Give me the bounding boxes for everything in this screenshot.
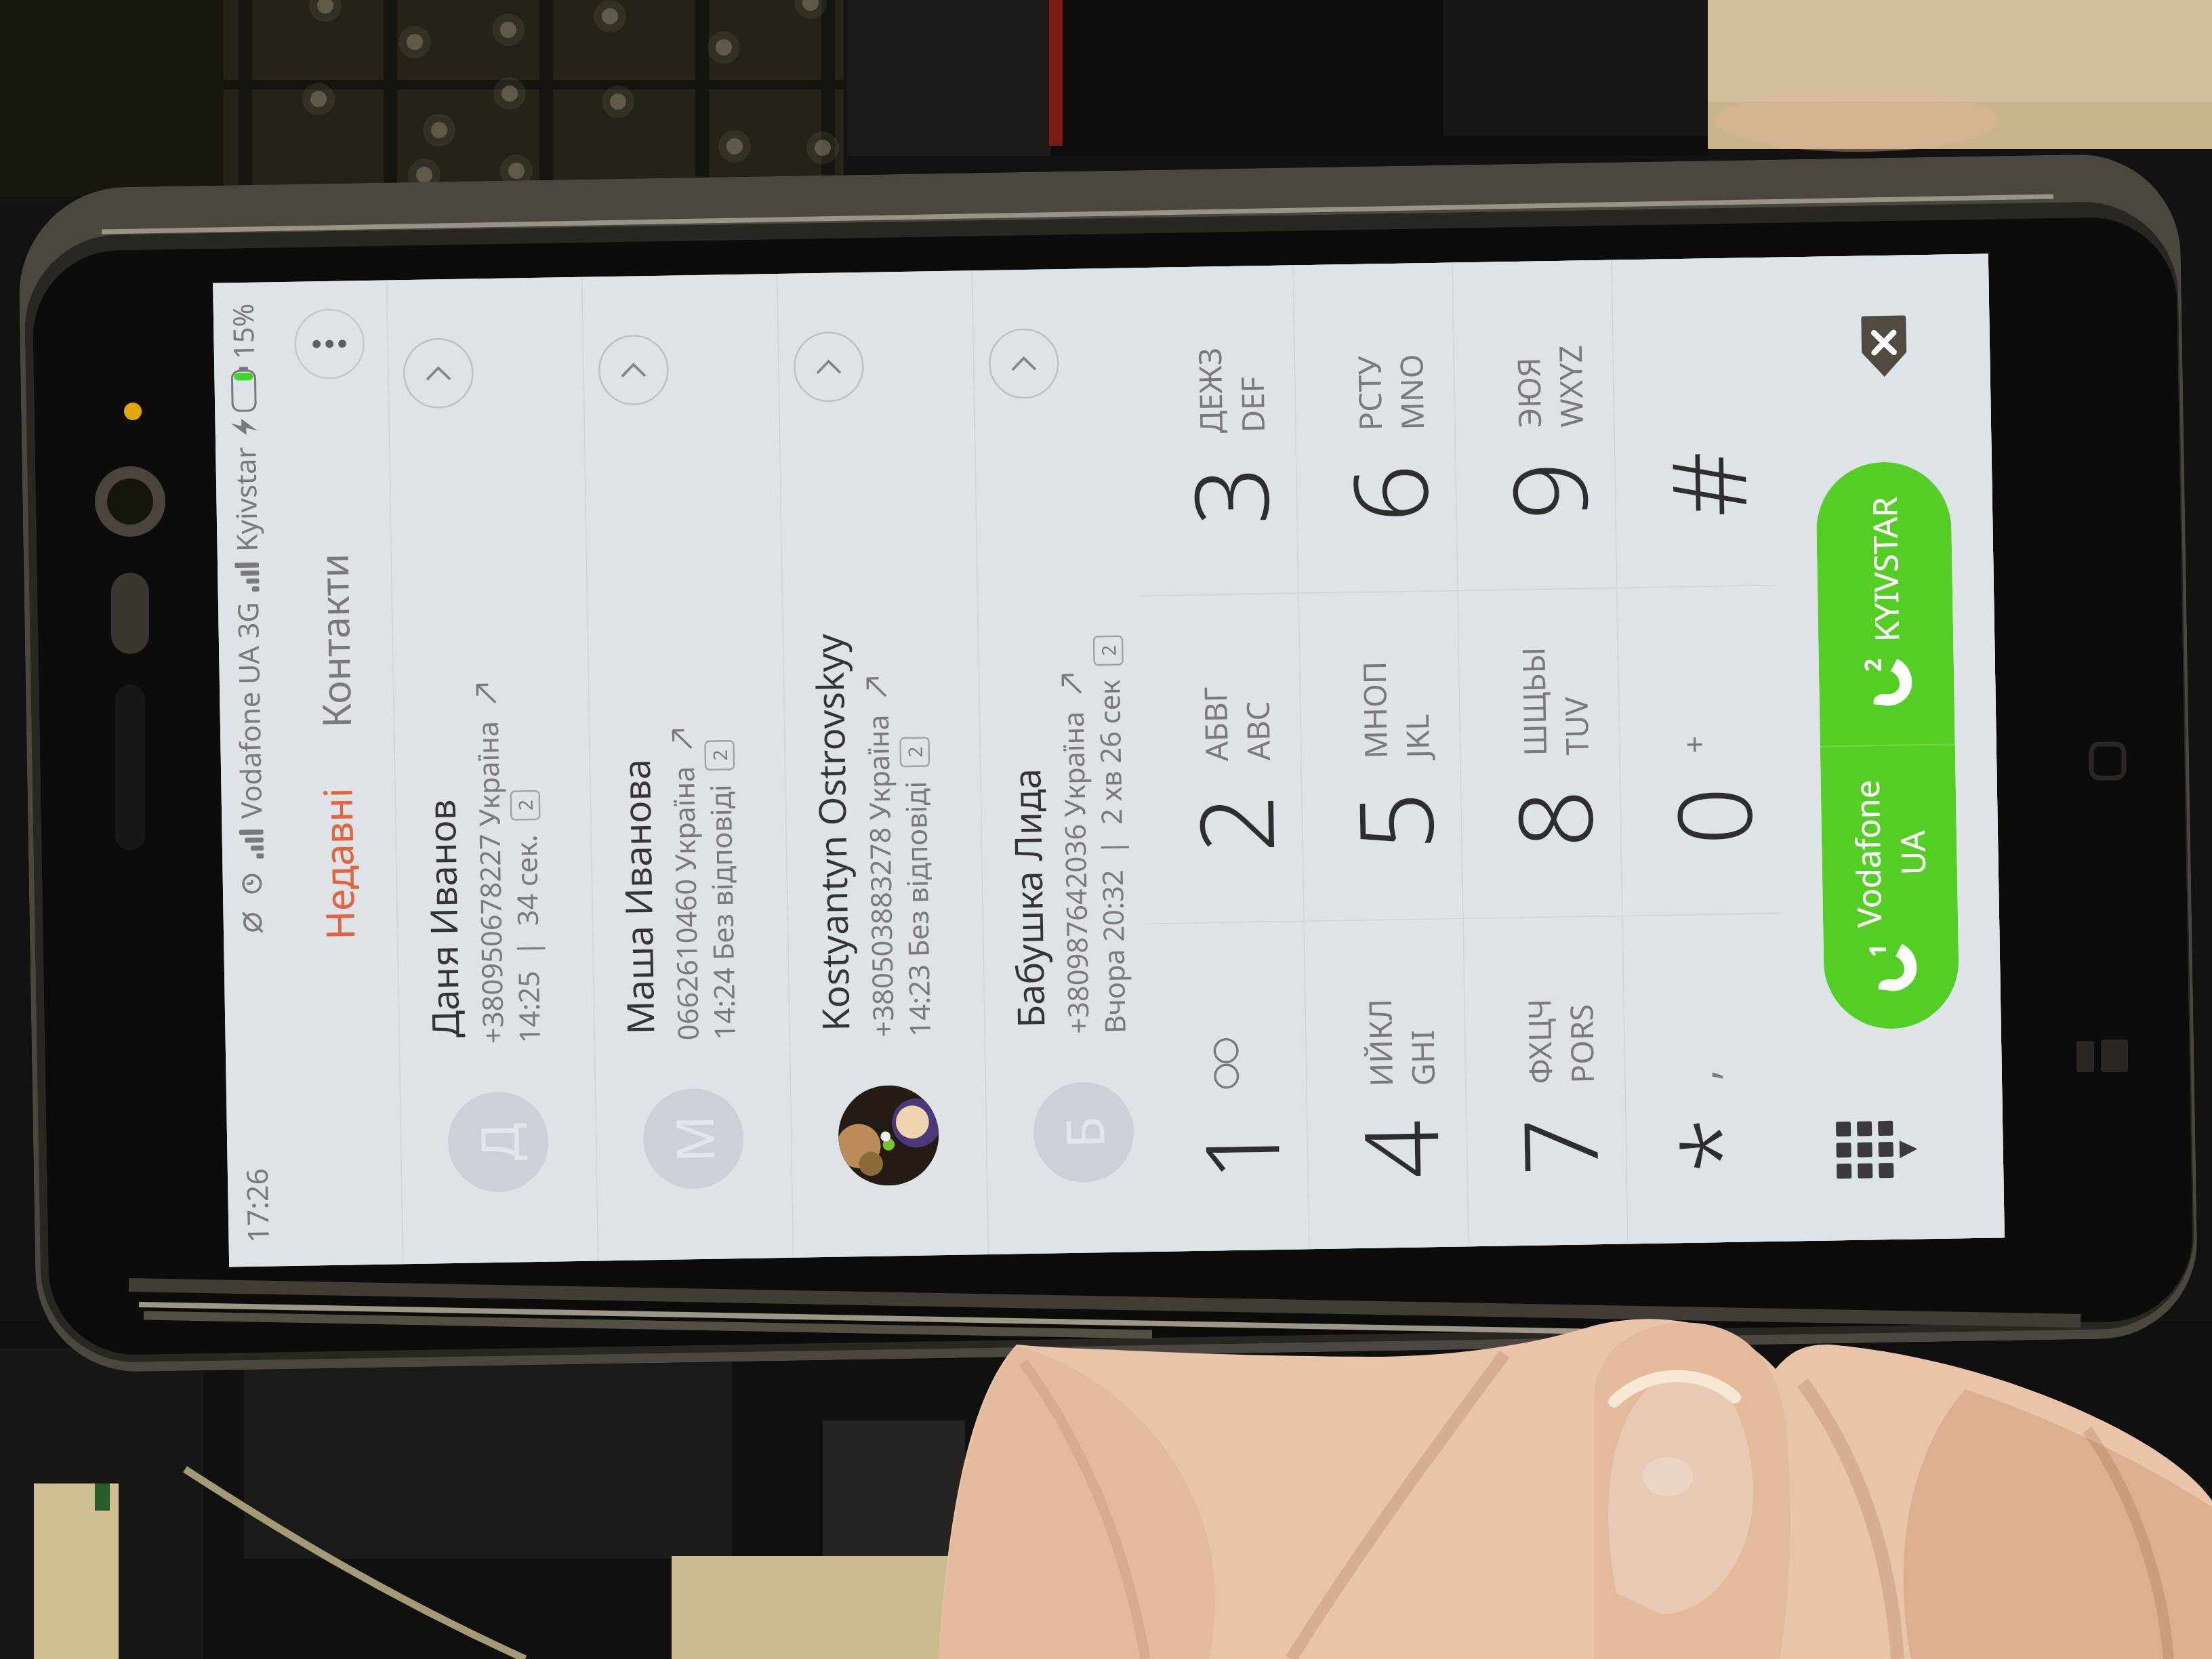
staticText: #	[1636, 450, 1776, 518]
staticText: +380987642036 Україна	[1053, 710, 1097, 1034]
staticText: *	[1647, 1116, 1787, 1174]
staticText: МНОП	[1352, 661, 1396, 759]
button[interactable]: 5	[1298, 591, 1463, 921]
staticText: 2	[1095, 644, 1121, 656]
staticText: 0	[1642, 786, 1782, 846]
staticText: 14:25 | 34 сек.	[506, 834, 548, 1043]
button[interactable]: #	[1611, 257, 1776, 588]
button[interactable]: 1	[1820, 745, 1960, 1030]
staticText: 0662610460 Україна	[664, 766, 707, 1041]
staticText: ABC	[1236, 701, 1279, 761]
staticText: Бабушка Лида	[1000, 768, 1056, 1028]
staticText: Контакти	[306, 553, 363, 728]
staticText: 9	[1477, 460, 1617, 521]
button[interactable]: Контакти	[275, 532, 394, 748]
staticText: PORS	[1559, 1004, 1603, 1084]
button[interactable]: Б	[972, 267, 1183, 1254]
staticText: 6	[1318, 463, 1458, 524]
staticText: 15%	[223, 303, 262, 360]
staticText: DEF	[1230, 376, 1273, 433]
button[interactable]: Hide keypad	[1823, 1108, 1909, 1194]
button[interactable]: 4	[1304, 919, 1469, 1249]
button[interactable]: 2	[1139, 593, 1304, 924]
staticText: 7	[1488, 1116, 1628, 1177]
button[interactable]: 3	[1134, 265, 1298, 596]
staticText: М	[658, 1114, 729, 1163]
staticText: 1	[1861, 943, 1893, 957]
button[interactable]: Kostyantyn Ostrovskyy	[777, 271, 988, 1258]
button[interactable]: More options	[293, 308, 366, 380]
staticText: MNO	[1389, 354, 1433, 430]
staticText: 2	[707, 749, 733, 761]
staticText: ЭЮЯ	[1507, 357, 1550, 428]
staticText: +380950678227 Україна	[468, 720, 512, 1044]
staticText: ДЕЖЗ	[1188, 347, 1231, 434]
staticText: UA	[1889, 830, 1935, 876]
staticText: ИЙКЛ	[1358, 998, 1401, 1087]
button[interactable]: *	[1622, 913, 1787, 1244]
button[interactable]: 6	[1293, 263, 1458, 593]
staticText: Д	[463, 1122, 534, 1162]
button[interactable]: Недавні	[279, 765, 398, 963]
staticText: +	[1672, 735, 1715, 754]
staticText: Маша Иванова	[610, 758, 665, 1035]
staticText: Kostyantyn Ostrovskyy	[803, 633, 860, 1032]
button[interactable]: 7	[1463, 916, 1628, 1246]
staticText: 3	[1159, 466, 1299, 526]
button[interactable]: Call details	[597, 334, 670, 406]
staticText: 2	[1857, 658, 1888, 672]
staticText: TUV	[1554, 696, 1597, 756]
staticText: 5	[1323, 791, 1463, 852]
staticText: 2	[512, 799, 538, 811]
button[interactable]: 1	[1145, 921, 1309, 1252]
staticText: JKL	[1395, 714, 1438, 758]
staticText: Вчора 20:32 | 2 хв 26 сек	[1089, 679, 1134, 1034]
staticText: WXYZ	[1548, 344, 1592, 428]
staticText: АБВГ	[1194, 686, 1237, 762]
staticText: ФХЦЧ	[1517, 998, 1561, 1084]
staticText: 8	[1483, 788, 1623, 849]
staticText: 2	[1164, 794, 1304, 854]
staticText: Vodafone UA 3G	[228, 602, 270, 819]
staticText: 14:24 Без відповіді	[700, 784, 743, 1040]
staticText: Б	[1048, 1115, 1119, 1149]
staticText: Vodafone	[1844, 779, 1891, 928]
staticText: 4	[1329, 1119, 1469, 1180]
staticText: +380503883278 Україна	[858, 714, 902, 1038]
button[interactable]: 0	[1617, 585, 1782, 916]
button[interactable]: М	[582, 274, 793, 1261]
button[interactable]: 8	[1458, 588, 1622, 918]
staticText: ШЩЬЫ	[1511, 647, 1555, 756]
staticText: 17:26	[236, 1168, 278, 1243]
staticText: KYIVSTAR	[1861, 496, 1909, 642]
button[interactable]: Block number	[1855, 309, 1912, 383]
staticText: ,	[1672, 1069, 1729, 1081]
staticText: Kyivstar	[225, 446, 266, 552]
staticText: 14:23 Без відповіді	[896, 781, 938, 1037]
button[interactable]: 9	[1452, 260, 1617, 591]
staticText: GHI	[1401, 1029, 1444, 1086]
button[interactable]: Д	[386, 277, 598, 1264]
staticText: 2	[902, 746, 928, 758]
staticText: Даня Иванов	[415, 799, 470, 1038]
button[interactable]: 2	[1815, 461, 1955, 746]
button[interactable]: Call details	[988, 327, 1060, 400]
staticText: Недавні	[310, 787, 366, 940]
button[interactable]: Call details	[402, 337, 475, 409]
staticText: 1	[1170, 1122, 1310, 1182]
button[interactable]: Call details	[793, 331, 865, 403]
staticText: РСТУ	[1347, 355, 1391, 431]
